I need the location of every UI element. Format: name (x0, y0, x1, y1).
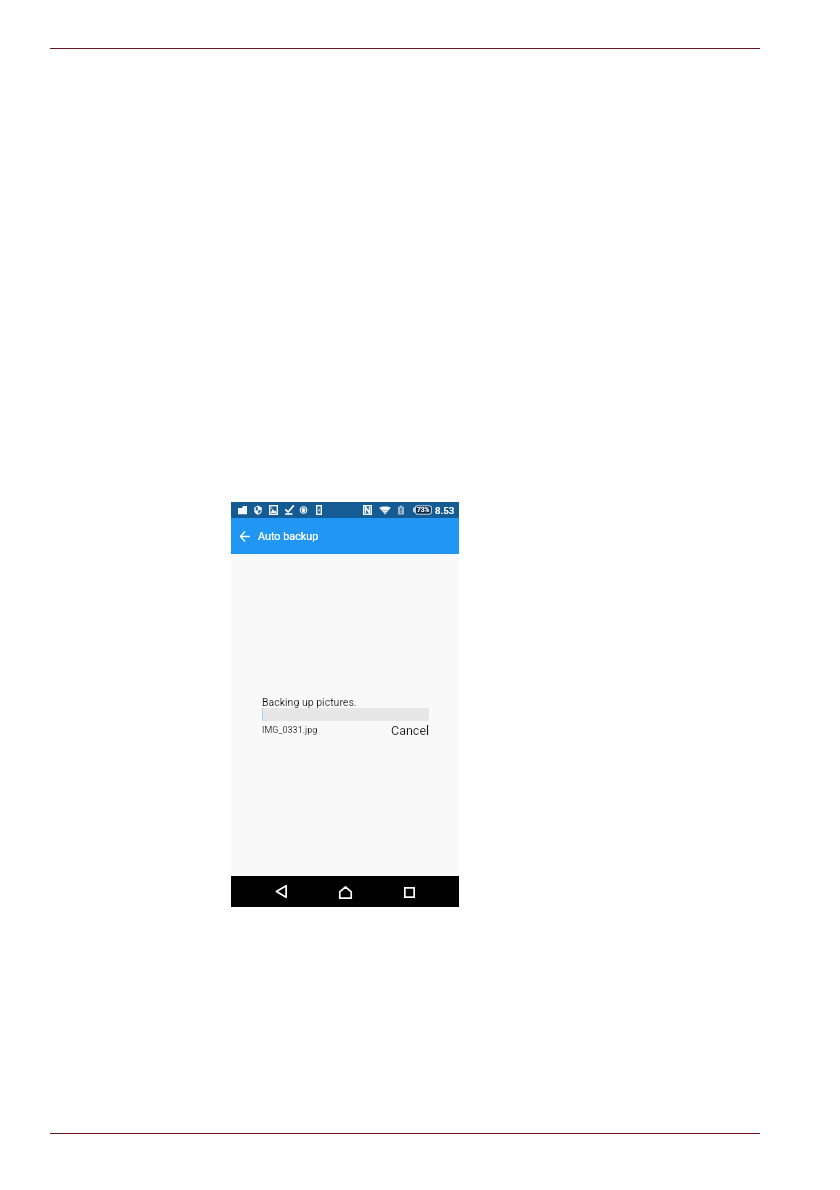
staticText: Backing up pictures. (262, 696, 357, 708)
staticText: Auto backup (258, 530, 319, 543)
button[interactable]: Cancel (389, 720, 432, 741)
staticText: 8.53 (435, 505, 455, 516)
button[interactable]: Navigate up (234, 518, 256, 554)
staticText: IMG_0331.jpg (262, 725, 318, 736)
button[interactable]: Home (326, 877, 364, 907)
button[interactable]: Back (262, 876, 300, 906)
staticText: Cancel (391, 723, 430, 738)
button[interactable]: Recent apps (390, 877, 428, 907)
staticText: 73% (417, 506, 430, 514)
